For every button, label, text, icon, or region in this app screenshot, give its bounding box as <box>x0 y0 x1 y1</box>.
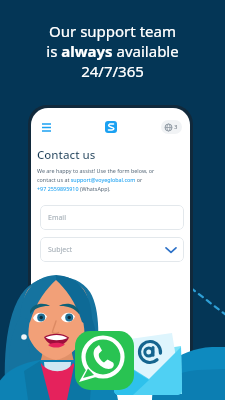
staticText: Our support team is always available 24/… <box>46 21 179 81</box>
button[interactable]: Home <box>105 121 117 133</box>
staticText: Contact us <box>37 147 96 163</box>
button[interactable]: Email <box>40 205 184 230</box>
staticText: Subject <box>48 245 73 255</box>
staticText: We are happy to assist! Use the form bel… <box>37 167 155 193</box>
button[interactable]: Subject <box>40 237 184 262</box>
button[interactable]: Menu <box>39 120 53 134</box>
button[interactable]: Language <box>161 120 182 134</box>
staticText: 3 <box>174 123 178 131</box>
staticText: Email <box>48 213 66 223</box>
